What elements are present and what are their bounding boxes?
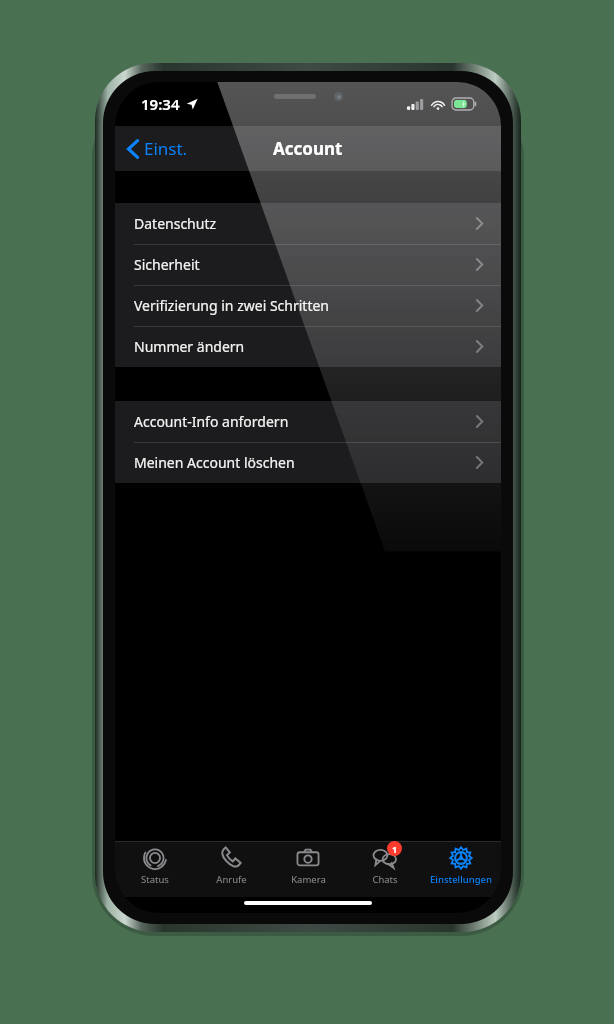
staticText: Datenschutz [134,214,217,233]
staticText: 1 [392,843,398,855]
staticText: Verifizierung in zwei Schritten [134,296,330,315]
button[interactable]: Account-Info anfordern [115,401,501,442]
button[interactable]: Datenschutz [115,203,501,244]
staticText: Einstellungen [430,873,492,886]
button[interactable]: Meinen Account löschen [115,442,501,483]
staticText: Status [141,873,169,886]
button[interactable]: Nummer ändern [115,326,501,367]
staticText: Einst. [144,137,188,160]
staticText: Anrufe [216,873,247,886]
staticText: Nummer ändern [134,337,245,356]
button[interactable]: Anrufe [194,846,268,886]
button[interactable]: Einstellungen [424,846,498,886]
staticText: 19:34 [141,94,180,114]
staticText: Sicherheit [134,255,200,274]
button[interactable]: Einst. [115,131,198,166]
button[interactable]: Sicherheit [115,244,501,285]
staticText: Kamera [291,873,326,886]
button[interactable]: Kamera [271,846,345,886]
button[interactable]: 1 [348,846,422,886]
staticText: Meinen Account löschen [134,453,295,472]
staticText: Account [273,137,343,160]
button[interactable]: Verifizierung in zwei Schritten [115,285,501,326]
button[interactable]: Status [118,846,192,886]
staticText: Chats [372,873,398,886]
staticText: Account-Info anfordern [134,412,289,431]
